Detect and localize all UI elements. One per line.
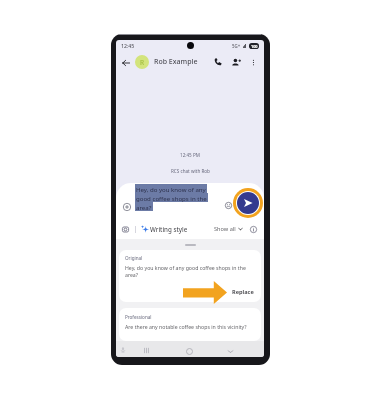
- button[interactable]: Add people: [229, 55, 243, 69]
- staticText: Show all: [214, 225, 236, 233]
- button[interactable]: Send: [237, 192, 259, 214]
- button[interactable]: Back: [119, 56, 132, 69]
- staticText: RCS chat with Rob: [171, 168, 210, 174]
- button[interactable]: Original: [119, 250, 261, 302]
- staticText: 12:45 PM: [180, 152, 200, 158]
- button[interactable]: Emoji: [222, 199, 234, 211]
- button[interactable]: Home: [183, 345, 195, 357]
- button[interactable]: Professional: [119, 308, 261, 341]
- staticText: Are there any notable coffee shops in th…: [125, 323, 247, 330]
- staticText: Professional: [125, 314, 152, 320]
- button[interactable]: Recents: [140, 344, 152, 356]
- button[interactable]: Voice input: [117, 344, 129, 356]
- staticText: R: [140, 58, 145, 67]
- staticText: 12:45: [121, 42, 135, 49]
- button[interactable]: Call: [211, 55, 225, 69]
- staticText: Replace: [232, 288, 254, 296]
- button[interactable]: Camera: [120, 224, 131, 235]
- button[interactable]: Attach: [120, 200, 133, 213]
- staticText: 100: [251, 44, 258, 49]
- button[interactable]: Show all: [214, 225, 243, 233]
- staticText: Hey, do you know of any: [136, 185, 206, 193]
- button[interactable]: Replace: [232, 288, 254, 296]
- button[interactable]: Info: [248, 224, 258, 234]
- staticText: 5G+: [232, 43, 241, 49]
- staticText: area?: [136, 203, 152, 211]
- staticText: Rob Example: [154, 57, 198, 67]
- button[interactable]: Writing style: [141, 225, 188, 233]
- staticText: Hey, do you know of any good coffee shop…: [125, 264, 255, 278]
- staticText: Original: [125, 255, 143, 261]
- staticText: good coffee shops in the: [136, 194, 207, 202]
- staticText: Writing style: [150, 225, 188, 233]
- button[interactable]: More options: [247, 56, 259, 68]
- button[interactable]: Hide keyboard: [224, 345, 236, 357]
